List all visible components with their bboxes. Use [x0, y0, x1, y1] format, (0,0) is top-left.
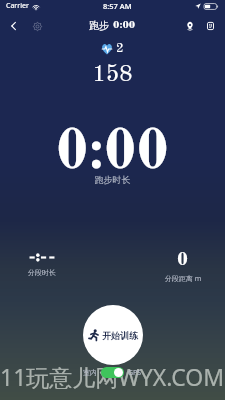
button[interactable]: 分段时长 — [22, 251, 62, 277]
button[interactable]: Settings — [28, 17, 46, 35]
staticText: 分段距离 m — [165, 274, 202, 284]
staticText: GPS — [128, 368, 142, 378]
button[interactable]: Music — [201, 17, 219, 35]
staticText: 跑步 — [89, 19, 109, 32]
button[interactable]: Location — [181, 17, 199, 35]
staticText: 室内 — [83, 368, 97, 377]
staticText: 跑步时长 — [0, 174, 225, 185]
staticText: 分段时长 — [28, 268, 56, 277]
button[interactable]: 0 — [163, 251, 203, 284]
button[interactable]: 开始训练 — [83, 305, 143, 365]
staticText: 0 — [177, 251, 189, 270]
staticText: 开始训练 — [102, 330, 138, 341]
staticText: 2 — [116, 42, 124, 55]
staticText: Carrier — [6, 1, 29, 11]
staticText: 8:57 AM — [103, 1, 132, 11]
button[interactable]: GPS toggle — [101, 367, 124, 378]
staticText: 0:00 — [0, 125, 225, 181]
staticText: 0:00 — [113, 20, 136, 31]
staticText: 11玩意儿网WYX.COM — [0, 361, 225, 392]
staticText: 158 — [0, 63, 225, 86]
button[interactable]: Back — [4, 17, 22, 35]
